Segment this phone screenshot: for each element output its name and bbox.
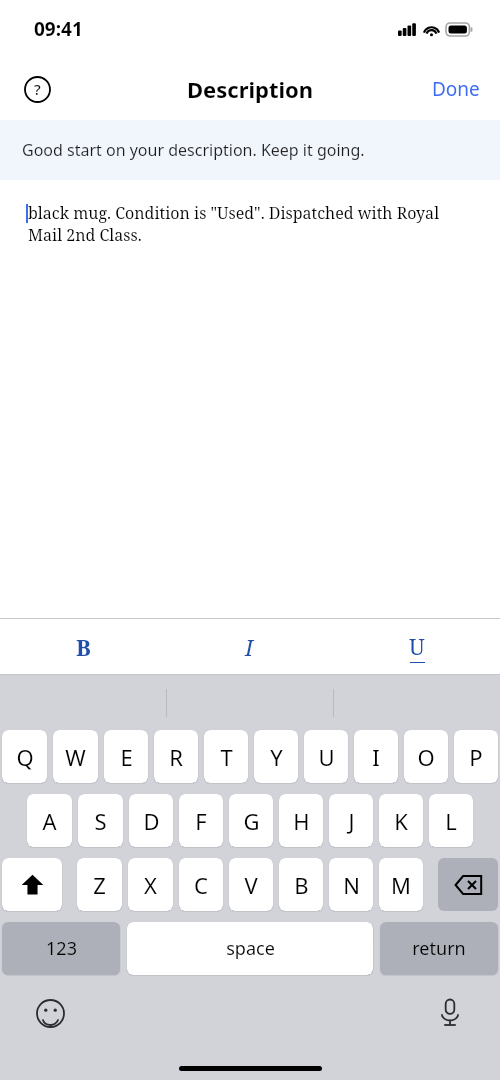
button[interactable]: Backspace — [438, 858, 498, 911]
staticText: B — [76, 632, 91, 662]
button[interactable]: Y — [254, 730, 298, 783]
button[interactable]: O — [404, 730, 448, 783]
staticText: ? — [34, 79, 41, 99]
staticText: P — [469, 742, 483, 772]
button[interactable]: S — [78, 794, 123, 847]
button[interactable]: I — [354, 730, 398, 783]
button[interactable]: D — [129, 794, 173, 847]
button[interactable]: Shift — [2, 858, 62, 911]
button[interactable]: G — [229, 794, 273, 847]
staticText: return — [412, 936, 466, 961]
staticText: G — [243, 806, 260, 836]
staticText: K — [394, 806, 408, 836]
button[interactable]: U — [304, 730, 348, 783]
staticText: F — [195, 806, 207, 836]
staticText: Description — [187, 74, 314, 104]
button[interactable]: J — [329, 794, 373, 847]
button[interactable]: Dictation — [432, 995, 468, 1031]
button[interactable]: space — [127, 922, 373, 975]
staticText: S — [94, 806, 107, 836]
button[interactable]: N — [329, 858, 373, 911]
staticText: O — [417, 742, 435, 772]
button[interactable]: F — [179, 794, 223, 847]
button[interactable]: I — [166, 619, 333, 674]
button[interactable]: Z — [77, 858, 122, 911]
button[interactable]: U — [333, 619, 500, 674]
staticText: black mug. Condition is "Used". Dispatch… — [28, 202, 460, 246]
button[interactable]: X — [128, 858, 173, 911]
button[interactable]: Help — [18, 70, 56, 108]
staticText: C — [194, 870, 208, 900]
button[interactable]: B — [0, 619, 166, 674]
staticText: space — [226, 936, 275, 961]
button[interactable]: 123 — [2, 922, 120, 975]
button[interactable]: A — [27, 794, 72, 847]
staticText: N — [343, 870, 360, 900]
button[interactable]: B — [279, 858, 323, 911]
staticText: H — [293, 806, 310, 836]
staticText: Done — [432, 76, 480, 102]
staticText: D — [143, 806, 160, 836]
staticText: E — [120, 742, 133, 772]
button[interactable]: P — [454, 730, 498, 783]
staticText: L — [445, 806, 457, 836]
button[interactable]: return — [380, 922, 498, 975]
button[interactable]: C — [179, 858, 223, 911]
staticText: U — [318, 742, 335, 772]
button[interactable]: Done — [412, 66, 500, 112]
button[interactable]: E — [104, 730, 148, 783]
staticText: J — [348, 806, 355, 836]
staticText: R — [169, 742, 183, 772]
button[interactable]: K — [379, 794, 423, 847]
staticText: M — [391, 870, 411, 900]
staticText: T — [220, 742, 233, 772]
staticText: 123 — [46, 936, 77, 961]
button[interactable]: M — [379, 858, 423, 911]
staticText: X — [144, 870, 157, 900]
staticText: Q — [16, 742, 34, 772]
staticText: Y — [270, 742, 283, 772]
staticText: A — [42, 806, 57, 836]
staticText: W — [65, 742, 86, 772]
staticText: I — [245, 632, 254, 662]
staticText: V — [244, 870, 258, 900]
button[interactable]: H — [279, 794, 323, 847]
button[interactable]: Emoji — [32, 995, 68, 1031]
button[interactable]: W — [53, 730, 98, 783]
staticText: Z — [93, 870, 106, 900]
button[interactable]: T — [204, 730, 248, 783]
staticText: U — [409, 631, 425, 661]
button[interactable]: V — [229, 858, 273, 911]
button[interactable]: R — [154, 730, 198, 783]
staticText: 09:41 — [34, 16, 83, 42]
staticText: B — [294, 870, 309, 900]
button[interactable]: L — [429, 794, 473, 847]
staticText: I — [372, 742, 380, 772]
staticText: Good start on your description. Keep it … — [22, 139, 365, 161]
button[interactable]: Q — [2, 730, 47, 783]
